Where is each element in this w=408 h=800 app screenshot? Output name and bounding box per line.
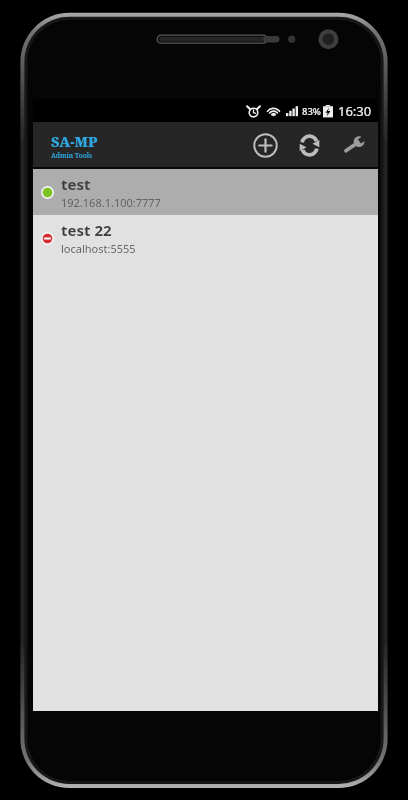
button[interactable]: Settings [331,122,375,169]
staticText: test 22 [61,220,112,240]
staticText: 83% [302,105,321,118]
button[interactable]: SA-MP [49,130,100,162]
button[interactable]: Add server [243,122,287,169]
staticText: SA-MP [51,132,98,151]
staticText: 192.168.1.100:7777 [61,195,161,210]
button[interactable]: test 22 [33,215,378,261]
staticText: test [61,174,91,194]
button[interactable]: Refresh [287,122,331,169]
staticText: localhost:5555 [61,241,136,256]
button[interactable]: test [33,169,378,215]
staticText: Admin Tools [51,151,93,160]
staticText: 16:30 [338,102,372,120]
